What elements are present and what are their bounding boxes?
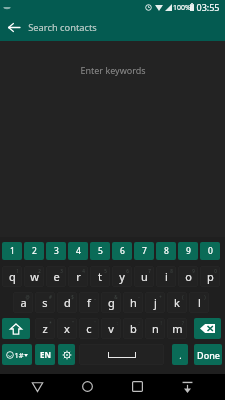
staticText: +	[159, 294, 162, 300]
staticText: (	[182, 294, 184, 300]
button[interactable]: ?	[167, 318, 187, 339]
staticText: 1	[10, 245, 15, 257]
staticText: Enter keywords	[80, 64, 146, 76]
staticText: *	[49, 320, 52, 326]
staticText: 2	[32, 245, 37, 257]
staticText: q	[9, 269, 16, 284]
staticText: p	[207, 269, 214, 284]
staticText: 8	[170, 268, 173, 274]
staticText: n	[152, 321, 159, 336]
button[interactable]: Back	[0, 14, 28, 41]
button[interactable]: 4	[68, 242, 88, 260]
button[interactable]: "	[57, 318, 77, 339]
staticText: j	[154, 295, 157, 310]
staticText: d	[64, 295, 71, 310]
staticText: f	[87, 295, 91, 310]
staticText: l	[198, 295, 201, 310]
button[interactable]: Settings	[58, 344, 75, 365]
button[interactable]: Hide keyboard	[167, 374, 207, 399]
staticText: a	[20, 295, 27, 310]
staticText: 4	[82, 268, 85, 274]
button[interactable]: 4	[68, 266, 88, 287]
button[interactable]: $	[57, 292, 77, 313]
button[interactable]: 5	[90, 242, 110, 260]
staticText: s	[42, 295, 48, 310]
button[interactable]: +	[145, 292, 165, 313]
staticText: ;	[138, 320, 140, 326]
staticText: u	[141, 269, 148, 284]
button[interactable]: 3	[46, 266, 66, 287]
button[interactable]: )	[189, 292, 209, 313]
staticText: 6	[120, 245, 125, 257]
staticText: z	[42, 321, 48, 336]
staticText: 9	[186, 245, 191, 257]
button[interactable]: 8	[156, 266, 176, 287]
button[interactable]: Symbols	[2, 344, 32, 365]
staticText: r	[76, 269, 81, 284]
button[interactable]: 1	[2, 266, 22, 287]
button[interactable]: ;	[123, 318, 143, 339]
button[interactable]: Recents	[117, 374, 157, 399]
button[interactable]: 6	[112, 266, 132, 287]
button[interactable]: 8	[156, 242, 176, 260]
button[interactable]: .	[172, 344, 188, 365]
button[interactable]: @	[13, 292, 33, 313]
button[interactable]: 2	[24, 242, 44, 260]
staticText: m	[172, 321, 183, 336]
button[interactable]: Back	[17, 374, 57, 399]
button[interactable]: 7	[134, 266, 154, 287]
staticText: o	[185, 269, 192, 284]
staticText: y	[119, 269, 125, 284]
staticText: .	[179, 349, 182, 361]
button[interactable]: #	[35, 292, 55, 313]
button[interactable]: *	[35, 318, 55, 339]
button[interactable]: EN	[35, 344, 55, 365]
button[interactable]: 6	[112, 242, 132, 260]
staticText: t	[98, 269, 102, 284]
button[interactable]: 2	[24, 266, 44, 287]
button[interactable]: _	[79, 292, 99, 313]
staticText: g	[108, 295, 115, 310]
button[interactable]: 0	[200, 242, 220, 260]
staticText: _	[94, 294, 96, 300]
button[interactable]: '	[79, 318, 99, 339]
staticText: h	[130, 295, 137, 310]
button[interactable]: !	[145, 318, 165, 339]
button[interactable]: :	[101, 318, 121, 339]
button[interactable]: Space	[79, 344, 164, 365]
button[interactable]: Done	[194, 344, 222, 365]
button[interactable]: (	[167, 292, 187, 313]
staticText: 1#	[14, 350, 24, 360]
button[interactable]: -	[123, 292, 143, 313]
staticText: "	[72, 320, 74, 326]
staticText: 3	[60, 268, 63, 274]
staticText: 100%	[173, 3, 191, 13]
staticText: 1	[16, 268, 19, 274]
button[interactable]: 9	[178, 266, 198, 287]
button[interactable]: &	[101, 292, 121, 313]
button[interactable]: 9	[178, 242, 198, 260]
button[interactable]: 3	[46, 242, 66, 260]
staticText: 03:55	[196, 1, 220, 13]
button[interactable]: Shift	[2, 318, 30, 339]
button[interactable]: 7	[134, 242, 154, 260]
button[interactable]: 1	[2, 242, 22, 260]
staticText: 0	[214, 268, 217, 274]
button[interactable]: Backspace	[194, 318, 221, 339]
staticText: 4	[76, 245, 81, 257]
staticText: 6	[126, 268, 129, 274]
staticText: Search contacts	[28, 21, 97, 34]
button[interactable]: Home	[67, 374, 107, 399]
staticText: v	[108, 321, 114, 336]
button[interactable]: 5	[90, 266, 110, 287]
button[interactable]: 0	[200, 266, 220, 287]
staticText: ?	[182, 320, 184, 326]
staticText: @	[25, 294, 30, 300]
staticText: &	[114, 294, 118, 300]
staticText: 8	[164, 245, 169, 257]
staticText: 5	[104, 268, 107, 274]
staticText: 7	[148, 268, 151, 274]
staticText: i	[165, 269, 168, 284]
